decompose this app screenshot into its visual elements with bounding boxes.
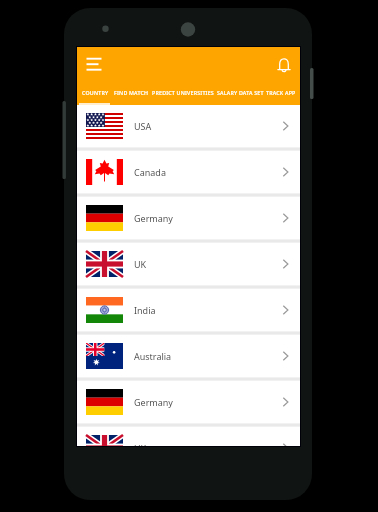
button[interactable]: SALARY DATA SET [217, 89, 264, 96]
staticText: FIND MATCH [114, 89, 149, 96]
button[interactable]: Germany [77, 197, 300, 239]
button[interactable]: Germany [77, 381, 300, 423]
staticText: UK [134, 442, 147, 446]
staticText: India [134, 304, 156, 316]
button[interactable]: India [77, 289, 300, 331]
staticText: Germany [134, 212, 173, 224]
button[interactable]: PREDICT UNIVERSITIES [152, 89, 214, 96]
button[interactable]: FIND MATCH [114, 89, 149, 96]
staticText: TRACK APP [266, 89, 296, 96]
staticText: Canada [134, 166, 166, 178]
button[interactable]: UK [77, 427, 300, 446]
button[interactable]: Notifications [272, 54, 296, 78]
button[interactable]: UK [77, 243, 300, 285]
button[interactable]: Australia [77, 335, 300, 377]
staticText: UK [134, 258, 147, 270]
button[interactable]: TRACK APP [266, 89, 296, 96]
staticText: USA [134, 120, 152, 132]
staticText: SALARY DATA SET [217, 89, 264, 96]
button[interactable]: Menu [81, 53, 107, 79]
button[interactable]: Canada [77, 151, 300, 193]
staticText: COUNTRY [82, 89, 109, 96]
button[interactable]: USA [77, 105, 300, 147]
staticText: PREDICT UNIVERSITIES [152, 89, 214, 96]
button[interactable]: COUNTRY [82, 89, 109, 96]
staticText: Germany [134, 396, 173, 408]
staticText: Australia [134, 350, 172, 362]
